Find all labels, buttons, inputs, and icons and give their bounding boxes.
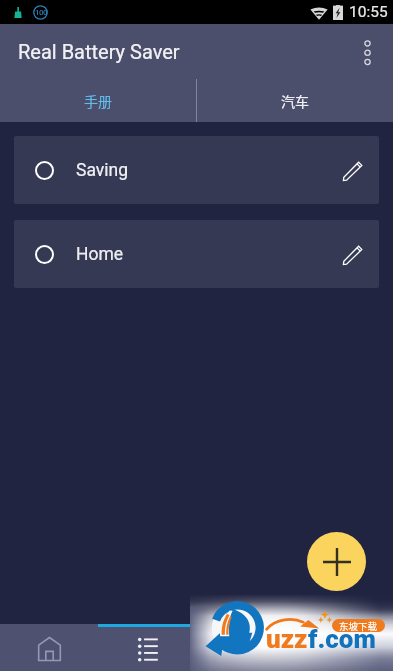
button[interactable]: Settings (295, 627, 393, 671)
button[interactable]: Home (14, 220, 379, 288)
staticText: uzz (266, 624, 308, 654)
staticText: 手册 (84, 91, 112, 111)
button[interactable]: Home (0, 627, 99, 671)
button[interactable]: Saving (14, 136, 379, 204)
button[interactable]: Edit (338, 156, 367, 185)
button[interactable]: 汽车 (197, 79, 393, 122)
staticText: 汽车 (281, 91, 309, 111)
staticText: Real Battery Saver (18, 40, 180, 63)
staticText: Saving (76, 160, 129, 181)
button[interactable]: List (99, 627, 197, 671)
button[interactable]: 手册 (0, 79, 196, 122)
button[interactable]: More options (345, 28, 393, 76)
button[interactable]: Edit (338, 240, 367, 269)
button[interactable]: Add (307, 532, 366, 591)
staticText: 东坡下载 (339, 619, 378, 632)
staticText: 100 (35, 8, 47, 17)
staticText: f.com (308, 624, 376, 654)
button[interactable]: Tools (197, 627, 295, 671)
staticText: Home (76, 244, 124, 265)
staticText: 10:55 (349, 3, 388, 21)
